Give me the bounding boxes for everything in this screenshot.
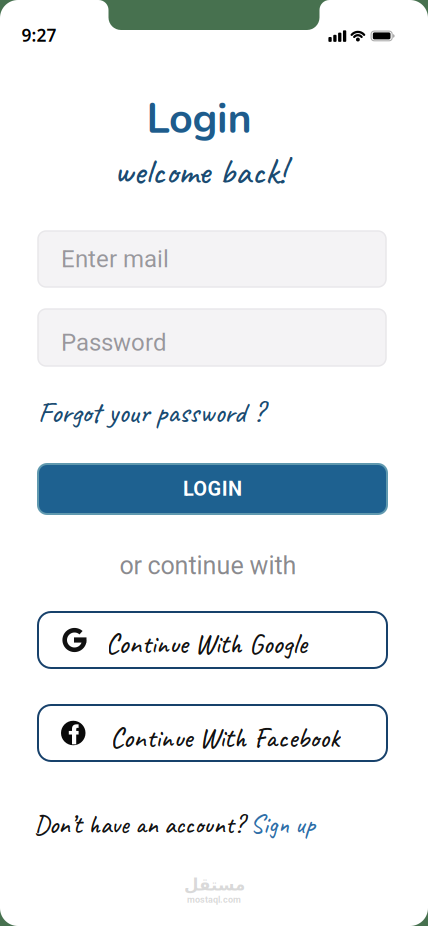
staticText: LOGIN bbox=[183, 477, 242, 501]
button[interactable]: Continue With Google bbox=[38, 612, 387, 668]
button[interactable]: Password bbox=[38, 309, 386, 366]
button[interactable]: Forgot your password ? bbox=[38, 394, 264, 431]
staticText: or continue with bbox=[119, 551, 296, 580]
staticText: Don’t have an account? bbox=[34, 808, 244, 841]
staticText: Login bbox=[146, 91, 251, 147]
staticText: 9:27 bbox=[21, 23, 56, 46]
button[interactable]: Continue With Facebook bbox=[38, 705, 387, 761]
staticText: Sign up bbox=[250, 808, 315, 841]
staticText: welcome back! bbox=[114, 149, 286, 194]
staticText: Continue With Google bbox=[105, 626, 306, 661]
staticText: Continue With Facebook bbox=[110, 720, 339, 755]
button[interactable]: Enter mail bbox=[38, 231, 386, 287]
button[interactable]: Sign up bbox=[250, 808, 315, 841]
staticText: Forgot your password ? bbox=[38, 394, 264, 431]
staticText: Password bbox=[61, 328, 167, 356]
staticText: mostaql.com bbox=[187, 894, 241, 905]
staticText: مستقل bbox=[183, 875, 244, 894]
button[interactable]: LOGIN bbox=[38, 464, 387, 514]
staticText: Enter mail bbox=[61, 245, 169, 273]
